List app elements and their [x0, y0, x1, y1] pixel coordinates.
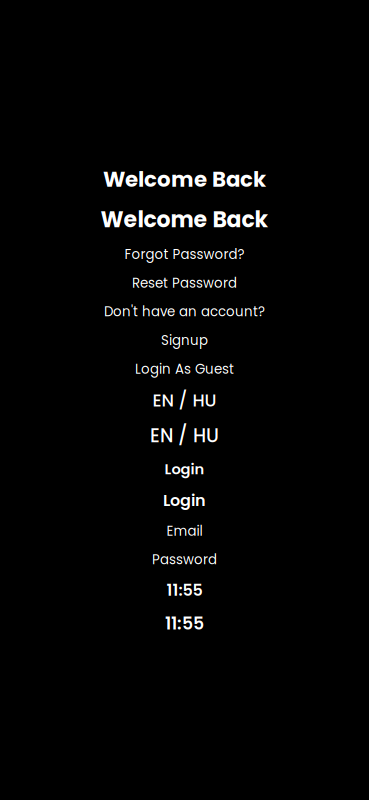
staticText: Login — [164, 459, 204, 479]
staticText: EN / HU — [150, 423, 219, 449]
staticText: Signup — [161, 331, 208, 350]
staticText: Welcome Back — [103, 164, 266, 194]
staticText: Login As Guest — [135, 360, 234, 378]
staticText: Password — [152, 550, 217, 569]
staticText: Login — [163, 489, 206, 512]
staticText: Don't have an account? — [104, 302, 265, 321]
staticText: 11:55 — [165, 611, 204, 636]
staticText: EN / HU — [152, 388, 216, 413]
staticText: Welcome Back — [100, 204, 268, 235]
staticText: Reset Password — [132, 274, 237, 292]
staticText: 11:55 — [166, 579, 202, 601]
staticText: Forgot Password? — [124, 245, 244, 264]
staticText: Email — [166, 522, 202, 540]
